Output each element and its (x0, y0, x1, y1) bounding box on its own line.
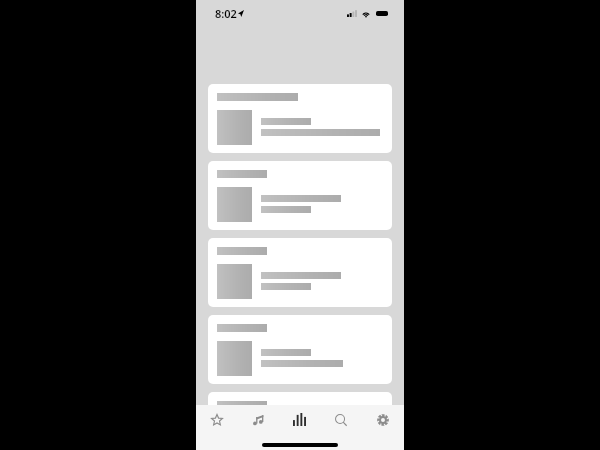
button[interactable] (208, 84, 392, 153)
button[interactable] (208, 161, 392, 230)
button[interactable] (208, 238, 392, 307)
button[interactable]: Settings (362, 405, 404, 434)
button[interactable] (208, 392, 392, 450)
staticText: 8:02 (215, 6, 237, 21)
button[interactable]: Search (320, 405, 362, 434)
button[interactable]: Music (237, 405, 278, 434)
button[interactable]: Favorites (196, 405, 237, 434)
button[interactable]: Charts (278, 405, 320, 434)
button[interactable] (208, 315, 392, 384)
